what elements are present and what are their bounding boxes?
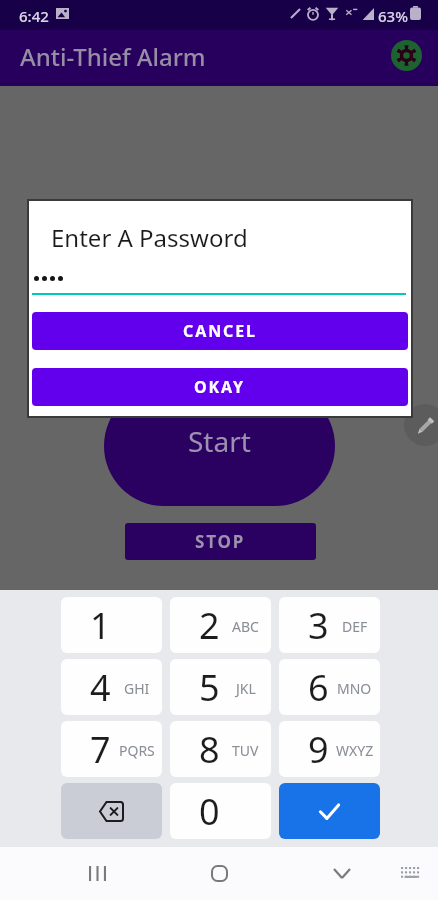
button[interactable]: Home: [195, 849, 243, 897]
button[interactable]: 9: [279, 721, 380, 777]
staticText: 6:42: [19, 6, 49, 26]
staticText: STOP: [195, 530, 246, 553]
staticText: DEF: [342, 617, 368, 636]
button[interactable]: Start: [104, 386, 335, 506]
staticText: 5: [199, 663, 220, 712]
button[interactable]: Back: [318, 849, 366, 897]
staticText: 0: [199, 787, 220, 836]
staticText: JKL: [236, 679, 256, 698]
button[interactable]: Settings: [391, 40, 422, 71]
staticText: GHI: [124, 679, 150, 698]
button[interactable]: Recent apps: [73, 849, 121, 897]
staticText: 3: [308, 601, 329, 650]
staticText: 7: [90, 725, 111, 774]
staticText: Enter A Password: [51, 221, 248, 254]
staticText: TUV: [232, 741, 259, 760]
button[interactable]: OKAY: [32, 368, 408, 406]
button[interactable]: 8: [170, 721, 271, 777]
button[interactable]: 3: [279, 597, 380, 653]
staticText: OKAY: [194, 376, 246, 398]
staticText: 4: [90, 663, 111, 712]
staticText: ABC: [232, 617, 259, 636]
button[interactable]: 0: [170, 783, 271, 839]
button[interactable]: 1: [61, 597, 162, 653]
staticText: MNO: [337, 679, 372, 698]
staticText: 9: [308, 725, 329, 774]
staticText: Start: [188, 422, 251, 460]
staticText: 63%: [378, 6, 408, 26]
staticText: CANCEL: [183, 320, 257, 342]
button[interactable]: Change keyboard: [387, 849, 435, 897]
button[interactable]: Delete: [61, 783, 162, 839]
staticText: Anti-Thief Alarm: [20, 40, 206, 73]
staticText: 2: [199, 601, 220, 650]
staticText: 8: [199, 725, 220, 774]
button[interactable]: Enter: [279, 783, 380, 839]
button[interactable]: STOP: [125, 523, 316, 560]
staticText: 6: [308, 663, 329, 712]
staticText: PQRS: [119, 741, 155, 760]
button[interactable]: CANCEL: [32, 312, 408, 350]
button[interactable]: 4: [61, 659, 162, 715]
staticText: WXYZ: [336, 741, 374, 760]
button[interactable]: 5: [170, 659, 271, 715]
button[interactable]: 7: [61, 721, 162, 777]
button[interactable]: 6: [279, 659, 380, 715]
staticText: 1: [90, 601, 111, 650]
button[interactable]: 2: [170, 597, 271, 653]
button[interactable]: Edit: [404, 404, 438, 446]
